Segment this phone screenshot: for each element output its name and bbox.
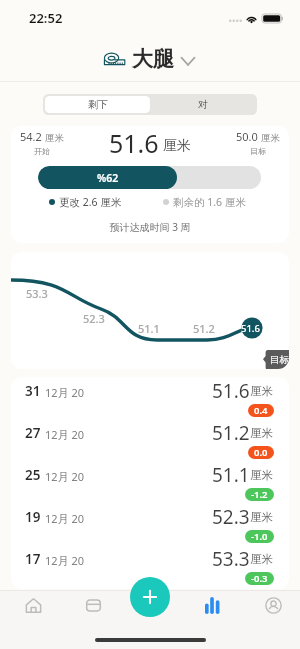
button[interactable]: 17 [11, 545, 289, 587]
staticText: 51.2 [212, 420, 250, 446]
button[interactable]: 大腿 [104, 46, 195, 72]
staticText: 12月 20 [45, 469, 85, 484]
staticText: 31 [25, 382, 41, 400]
staticText: 25 [25, 466, 41, 484]
staticText: 预计达成时间 3 周 [11, 220, 289, 234]
button[interactable]: 27 [11, 419, 289, 461]
staticText: 53.3 [212, 546, 250, 572]
staticText: 剩下 [88, 98, 108, 111]
staticText: 12月 20 [45, 511, 85, 526]
staticText: 厘米 [250, 468, 273, 482]
staticText: 51.1 [138, 321, 160, 336]
button[interactable]: Statistics [180, 590, 240, 621]
staticText: 厘米 [250, 510, 273, 524]
button[interactable]: 25 [11, 461, 289, 503]
staticText: 54.2 [20, 129, 42, 144]
button[interactable]: Profile [240, 590, 300, 621]
button[interactable]: Journal [60, 590, 120, 621]
staticText: 12月 20 [45, 553, 85, 568]
button[interactable]: 对 [150, 96, 255, 113]
button[interactable]: 31 [11, 377, 289, 419]
staticText: 19 [25, 508, 41, 526]
staticText: 22:52 [29, 9, 63, 27]
staticText: -0.3 [251, 572, 268, 585]
button[interactable]: Home [0, 590, 60, 621]
staticText: 厘米 [163, 137, 191, 155]
staticText: 厘米 [250, 384, 273, 398]
staticText: 12月 20 [45, 385, 85, 400]
staticText: 51.1 [212, 462, 250, 488]
staticText: 大腿 [132, 46, 174, 72]
staticText: 目标 [270, 354, 289, 366]
staticText: 52.3 [83, 311, 105, 326]
staticText: 开始 [34, 146, 50, 156]
staticText: 50.0 [236, 129, 258, 144]
staticText: 51.6 [212, 378, 250, 404]
button[interactable]: Add [130, 577, 170, 617]
button[interactable]: 剩下 [45, 96, 150, 113]
staticText: -1.0 [251, 530, 268, 543]
staticText: 51.6 [241, 322, 260, 335]
staticText: -1.2 [251, 488, 268, 501]
button[interactable]: 19 [11, 503, 289, 545]
staticText: 对 [198, 98, 208, 111]
staticText: 17 [25, 550, 41, 568]
staticText: 52.3 [212, 504, 250, 530]
staticText: 0.0 [254, 446, 268, 459]
staticText: 目标 [250, 146, 266, 156]
staticText: 厘米 [250, 426, 273, 440]
staticText: 51.2 [193, 321, 215, 336]
staticText: 剩余的 1.6 厘米 [173, 195, 246, 209]
staticText: 厘米 [250, 552, 273, 566]
staticText: 53.3 [26, 286, 48, 301]
staticText: 0.4 [254, 404, 268, 417]
staticText: 51.6 [109, 126, 159, 160]
staticText: 27 [25, 424, 41, 442]
staticText: 更改 2.6 厘米 [59, 195, 122, 209]
staticText: 厘米 [261, 132, 280, 144]
staticText: 厘米 [45, 132, 64, 144]
staticText: %62 [97, 171, 119, 185]
staticText: 12月 20 [45, 427, 85, 442]
